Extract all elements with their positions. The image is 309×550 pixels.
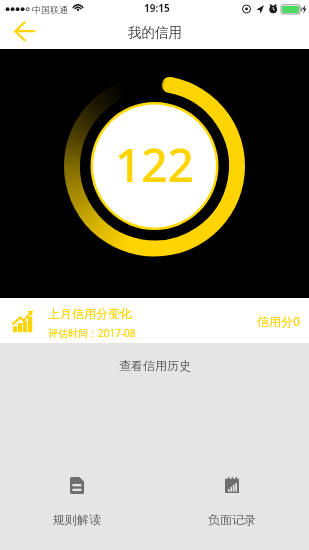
button[interactable]: 负面记录 [194,471,270,527]
staticText: 上月信用分变化 [48,306,132,321]
staticText: 我的信用 [128,24,182,41]
staticText: 信用分0 [257,313,300,329]
staticText: 评估时间：2017-08 [48,326,136,340]
staticText: 中国联通 [32,4,68,15]
button[interactable]: 上月信用分变化 [0,298,309,343]
staticText: 规则解读 [53,512,101,527]
staticText: 19:15 [144,1,170,15]
button[interactable]: 规则解读 [39,471,115,527]
button[interactable]: 查看信用历史 [0,343,309,387]
staticText: 122 [115,133,194,196]
staticText: 查看信用历史 [119,358,191,373]
button[interactable]: Back [6,20,44,48]
staticText: 负面记录 [208,512,256,527]
